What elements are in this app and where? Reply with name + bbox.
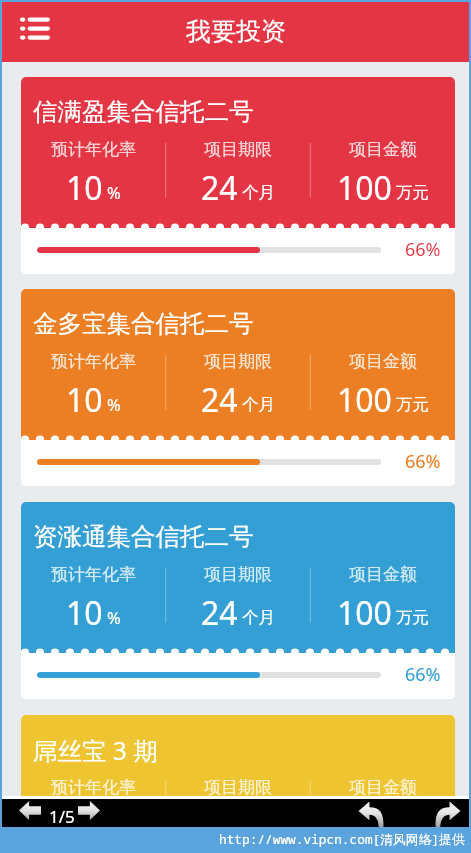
staticText: 10: [66, 378, 103, 422]
button[interactable]: 资涨通集合信托二号: [21, 502, 455, 699]
staticText: 万元: [396, 182, 429, 203]
staticText: 1/5: [49, 805, 75, 828]
staticText: 项目金额: [349, 777, 417, 796]
staticText: 资涨通集合信托二号: [33, 521, 254, 552]
staticText: 10: [66, 166, 103, 210]
staticText: 个月: [242, 607, 275, 628]
staticText: 预计年化率: [51, 139, 136, 160]
staticText: 万元: [396, 607, 429, 628]
staticText: 24: [201, 166, 238, 210]
staticText: 项目金额: [349, 351, 417, 372]
staticText: 100: [337, 166, 392, 210]
staticText: 24: [201, 591, 238, 635]
staticText: 个月: [242, 182, 275, 203]
staticText: 100: [337, 378, 392, 422]
staticText: %: [107, 606, 121, 628]
staticText: 预计年化率: [51, 351, 136, 372]
button[interactable]: Menu: [20, 16, 52, 40]
button[interactable]: 金多宝集合信托二号: [21, 289, 455, 486]
staticText: http://www.vipcn.com[清风网络]提供: [219, 830, 465, 847]
staticText: 预计年化率: [51, 564, 136, 585]
button[interactable]: Next page: [78, 801, 100, 820]
staticText: %: [107, 181, 121, 203]
staticText: 我要投资: [186, 16, 286, 47]
staticText: 项目金额: [349, 139, 417, 160]
staticText: 项目期限: [204, 139, 272, 160]
staticText: 66%: [405, 449, 441, 474]
staticText: 66%: [405, 662, 441, 687]
button[interactable]: Back: [358, 801, 384, 827]
staticText: 金多宝集合信托二号: [33, 308, 254, 339]
staticText: 个月: [242, 394, 275, 415]
staticText: 24: [201, 378, 238, 422]
staticText: 项目期限: [204, 777, 272, 796]
staticText: 项目金额: [349, 564, 417, 585]
staticText: 10: [66, 591, 103, 635]
button[interactable]: 屌丝宝 3 期: [21, 715, 455, 796]
staticText: 屌丝宝 3 期: [33, 734, 158, 767]
staticText: 预计年化率: [51, 777, 136, 796]
staticText: 100: [337, 591, 392, 635]
staticText: 项目期限: [204, 564, 272, 585]
staticText: 信满盈集合信托二号: [33, 96, 254, 127]
button[interactable]: Previous page: [19, 801, 41, 820]
button[interactable]: 信满盈集合信托二号: [21, 77, 455, 274]
staticText: %: [107, 393, 121, 415]
staticText: 66%: [405, 237, 441, 262]
button[interactable]: Forward: [435, 801, 461, 827]
staticText: 项目期限: [204, 351, 272, 372]
staticText: 万元: [396, 394, 429, 415]
